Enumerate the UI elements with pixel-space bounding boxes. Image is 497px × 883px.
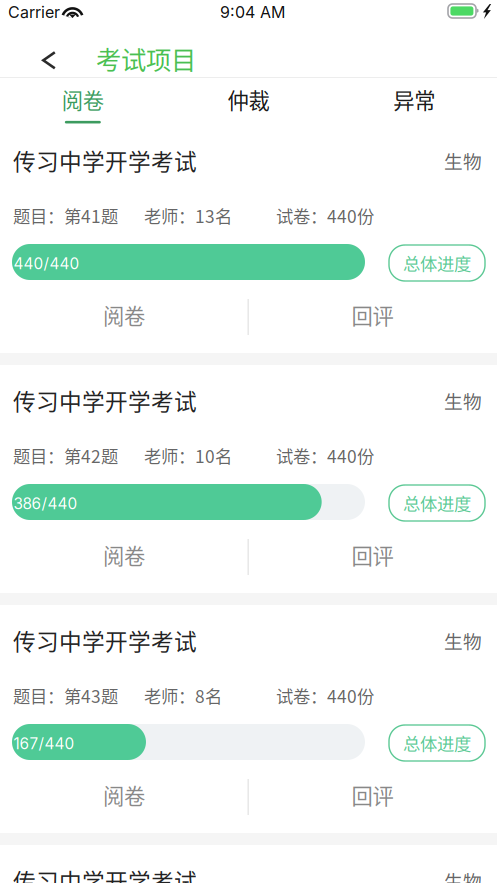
staticText: 生物 (444, 627, 482, 654)
staticText: 题目：第42题 (13, 443, 118, 468)
staticText: 阅卷 (103, 540, 145, 570)
staticText: 老师：10名 (144, 443, 232, 468)
button[interactable]: 阅卷 (0, 289, 248, 341)
staticText: 阅卷 (103, 780, 145, 810)
staticText: 考试项目 (96, 40, 196, 77)
staticText: 异常 (393, 84, 435, 115)
button[interactable]: 回评 (248, 529, 497, 581)
button[interactable]: 回评 (248, 769, 497, 821)
staticText: 总体进度 (403, 250, 471, 276)
staticText: Carrier (8, 2, 60, 22)
staticText: 阅卷 (62, 84, 104, 115)
button[interactable]: 阅卷 (0, 529, 248, 581)
button[interactable]: 仲裁 (166, 78, 331, 125)
staticText: 回评 (351, 300, 393, 330)
staticText: 回评 (351, 540, 393, 570)
staticText: 题目：第41题 (13, 203, 118, 228)
button[interactable]: 阅卷 (0, 769, 248, 821)
staticText: 传习中学开学考试 (13, 864, 197, 883)
staticText: 9:04 AM (220, 2, 285, 22)
button[interactable]: 阅卷 (0, 78, 166, 125)
button[interactable]: 总体进度 (389, 245, 485, 281)
staticText: 总体进度 (403, 490, 471, 516)
staticText: 试卷：440份 (276, 203, 374, 228)
staticText: 回评 (351, 780, 393, 810)
button[interactable]: Back (28, 43, 70, 78)
staticText: 仲裁 (227, 84, 269, 115)
staticText: 试卷：440份 (276, 683, 374, 708)
button[interactable]: 回评 (248, 289, 497, 341)
staticText: 生物 (444, 867, 482, 883)
staticText: 老师：8名 (144, 683, 222, 708)
staticText: 总体进度 (403, 730, 471, 756)
button[interactable]: 总体进度 (389, 485, 485, 521)
staticText: 老师：13名 (144, 203, 232, 228)
staticText: 传习中学开学考试 (13, 144, 197, 177)
staticText: 386/440 (13, 494, 77, 513)
staticText: 生物 (444, 387, 482, 414)
staticText: 题目：第43题 (13, 683, 118, 708)
staticText: 440/440 (13, 254, 79, 273)
staticText: 试卷：440份 (276, 443, 374, 468)
staticText: 167/440 (13, 734, 74, 753)
button[interactable]: 总体进度 (389, 725, 485, 761)
staticText: 生物 (444, 147, 482, 174)
staticText: 传习中学开学考试 (13, 384, 197, 417)
button[interactable]: 异常 (331, 78, 497, 125)
staticText: 阅卷 (103, 300, 145, 330)
staticText: 传习中学开学考试 (13, 624, 197, 657)
